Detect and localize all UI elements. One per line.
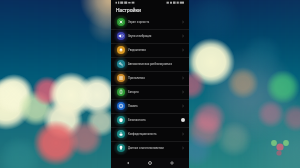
button[interactable]: Автоматическая разблокировка и подписка — [111, 57, 189, 71]
button[interactable]: Уведомления — [111, 43, 189, 57]
staticText: Батарея — [128, 90, 139, 94]
staticText: Память — [128, 104, 138, 108]
button[interactable]: Приложения — [111, 71, 189, 85]
staticText: Экран и яркость — [128, 20, 150, 24]
staticText: Автоматическая разблокировка и подписка — [128, 62, 185, 66]
button[interactable]: Звуки и вибрация — [111, 29, 189, 43]
staticText: Уведомления — [128, 48, 146, 52]
staticText: Данные о местоположении — [128, 146, 164, 150]
staticText: Приложения — [128, 76, 145, 80]
button[interactable]: Память — [111, 99, 189, 113]
staticText: Звуки и вибрация — [128, 34, 152, 38]
button[interactable]: Экран и яркость — [111, 15, 189, 29]
button[interactable]: Конфиденциальность — [111, 127, 189, 141]
button[interactable]: Данные о местоположении — [111, 141, 189, 155]
staticText: Настройки — [116, 7, 142, 14]
staticText: Безопасность — [128, 118, 146, 122]
button[interactable]: Recent apps — [167, 158, 177, 168]
button[interactable]: Home — [145, 158, 155, 168]
button[interactable]: Батарея — [111, 85, 189, 99]
button[interactable]: Back — [123, 158, 133, 168]
button[interactable]: Безопасность — [111, 113, 189, 127]
staticText: Конфиденциальность — [128, 132, 157, 136]
